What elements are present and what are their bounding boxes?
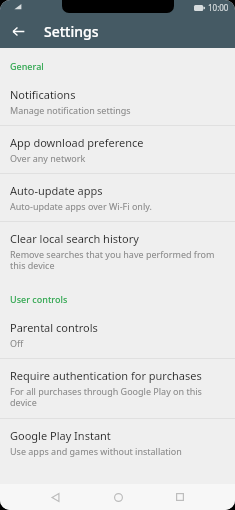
staticText: Settings	[44, 22, 99, 41]
button[interactable]: Back	[6, 19, 30, 43]
button[interactable]: Auto-update apps	[0, 174, 235, 221]
staticText: User controls	[10, 293, 68, 305]
button[interactable]: Notifications	[0, 78, 235, 125]
button[interactable]: Parental controls	[0, 311, 235, 358]
button[interactable]: Back	[44, 486, 66, 508]
staticText: Clear local search history	[10, 231, 139, 246]
staticText: Notifications	[10, 87, 76, 102]
staticText: Parental controls	[10, 320, 98, 335]
staticText: Off	[10, 337, 24, 349]
button[interactable]: Home	[107, 486, 129, 508]
button[interactable]: App download preference	[0, 126, 235, 173]
staticText: Auto-update apps	[10, 183, 103, 198]
staticText: Use apps and games without installation	[10, 445, 182, 457]
staticText: Auto-update apps over Wi-Fi only.	[10, 200, 152, 212]
staticText: Google Play Instant	[10, 428, 111, 443]
staticText: Manage notification settings	[10, 104, 131, 116]
staticText: General	[10, 60, 44, 72]
staticText: 10:00	[208, 2, 229, 13]
staticText: Remove searches that you have performed …	[10, 248, 225, 272]
staticText: For all purchases through Google Play on…	[10, 385, 225, 409]
button[interactable]: Recent apps	[169, 486, 191, 508]
staticText: Require authentication for purchases	[10, 368, 202, 383]
button[interactable]: Google Play Instant	[0, 419, 235, 466]
button[interactable]: Clear local search history	[0, 222, 235, 281]
button[interactable]: Require authentication for purchases	[0, 359, 235, 418]
staticText: Over any network	[10, 152, 86, 164]
staticText: App download preference	[10, 135, 144, 150]
